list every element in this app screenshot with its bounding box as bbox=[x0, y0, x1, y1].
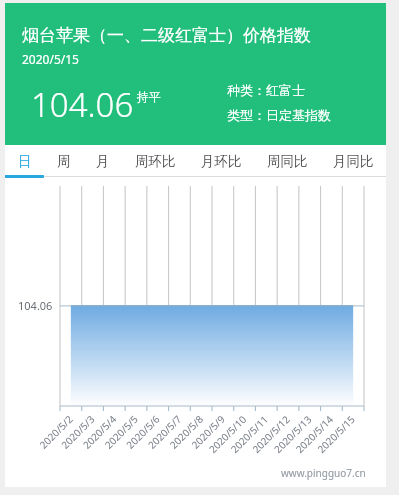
staticText: 类型：日定基指数 bbox=[227, 107, 331, 123]
button[interactable]: 月 bbox=[83, 145, 122, 178]
staticText: 种类：红富士 bbox=[227, 82, 305, 98]
staticText: 月环比 bbox=[201, 153, 242, 170]
button[interactable]: 周同比 bbox=[254, 145, 320, 178]
staticText: 2020/5/15 bbox=[22, 51, 79, 67]
staticText: 104.06 bbox=[31, 82, 134, 127]
staticText: 月同比 bbox=[333, 153, 374, 170]
button[interactable]: 周环比 bbox=[122, 145, 188, 178]
staticText: 周 bbox=[57, 153, 71, 170]
staticText: 周环比 bbox=[135, 153, 176, 170]
staticText: 月 bbox=[96, 153, 110, 170]
button[interactable]: 月环比 bbox=[188, 145, 254, 178]
button[interactable]: 周 bbox=[44, 145, 83, 178]
staticText: 日 bbox=[18, 153, 32, 170]
button[interactable]: 月同比 bbox=[320, 145, 386, 178]
button[interactable]: 日 bbox=[5, 145, 44, 178]
staticText: 周同比 bbox=[267, 153, 308, 170]
staticText: 持平 bbox=[137, 89, 161, 104]
staticText: 烟台苹果（一、二级红富士）价格指数 bbox=[22, 25, 311, 46]
